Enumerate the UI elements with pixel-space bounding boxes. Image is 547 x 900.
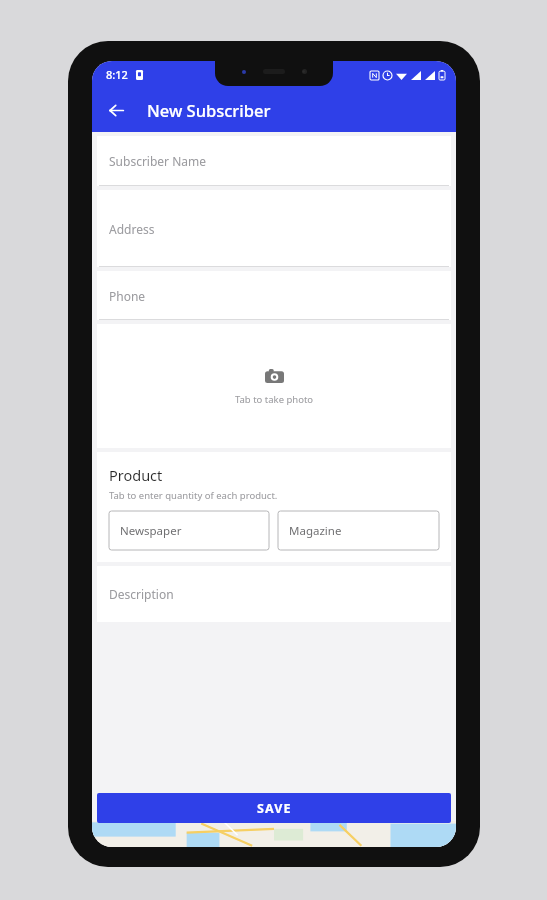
- staticText: Phone: [109, 288, 146, 304]
- staticText: 8:12: [106, 67, 128, 82]
- button[interactable]: Back: [98, 92, 134, 128]
- button[interactable]: Description: [97, 566, 451, 622]
- staticText: New Subscriber: [147, 99, 271, 121]
- staticText: Magazine: [289, 523, 342, 539]
- button[interactable]: SAVE: [97, 793, 451, 823]
- staticText: Newspaper: [120, 523, 182, 539]
- button[interactable]: Tab to take photo: [97, 324, 451, 448]
- staticText: Tab to enter quantity of each product.: [109, 489, 278, 502]
- staticText: Address: [109, 221, 155, 237]
- staticText: Description: [109, 586, 174, 602]
- button[interactable]: Magazine: [278, 511, 439, 550]
- button[interactable]: Address: [97, 190, 451, 267]
- staticText: Tab to take photo: [235, 393, 314, 406]
- staticText: Product: [109, 465, 163, 485]
- button[interactable]: Newspaper: [109, 511, 269, 550]
- button[interactable]: Subscriber Name: [97, 136, 451, 186]
- staticText: SAVE: [257, 800, 292, 817]
- button[interactable]: Phone: [97, 271, 451, 320]
- staticText: Subscriber Name: [109, 153, 207, 169]
